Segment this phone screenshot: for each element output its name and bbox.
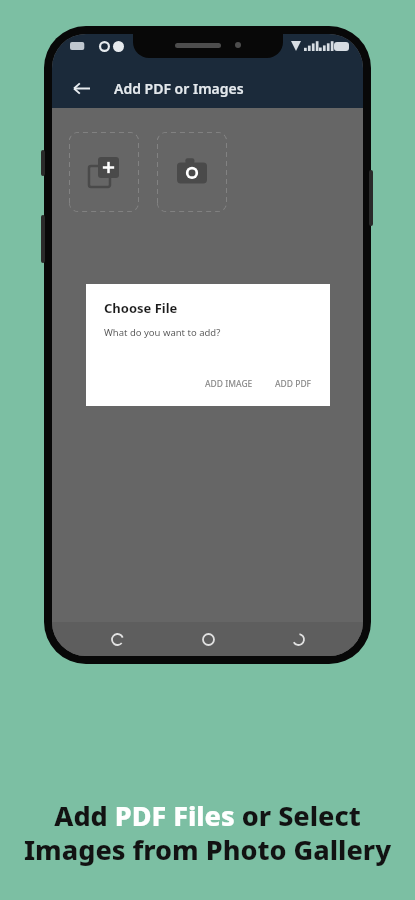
button[interactable]: Back xyxy=(64,71,98,105)
staticText: What do you want to add? xyxy=(104,326,221,339)
button[interactable]: Take photo xyxy=(157,132,227,212)
staticText: Choose File xyxy=(104,299,178,317)
staticText: ADD IMAGE xyxy=(205,378,253,390)
staticText: Add PDF Files or Select Images from Phot… xyxy=(18,797,397,868)
staticText: Add PDF or Images xyxy=(114,79,244,98)
button[interactable]: Back xyxy=(285,626,311,652)
staticText: ADD PDF xyxy=(275,378,312,390)
button[interactable]: Home xyxy=(195,626,221,652)
button[interactable]: Recents xyxy=(104,626,130,652)
button[interactable]: ADD IMAGE xyxy=(197,372,261,396)
button[interactable]: Add from gallery xyxy=(69,132,139,212)
button[interactable]: ADD PDF xyxy=(267,372,320,396)
